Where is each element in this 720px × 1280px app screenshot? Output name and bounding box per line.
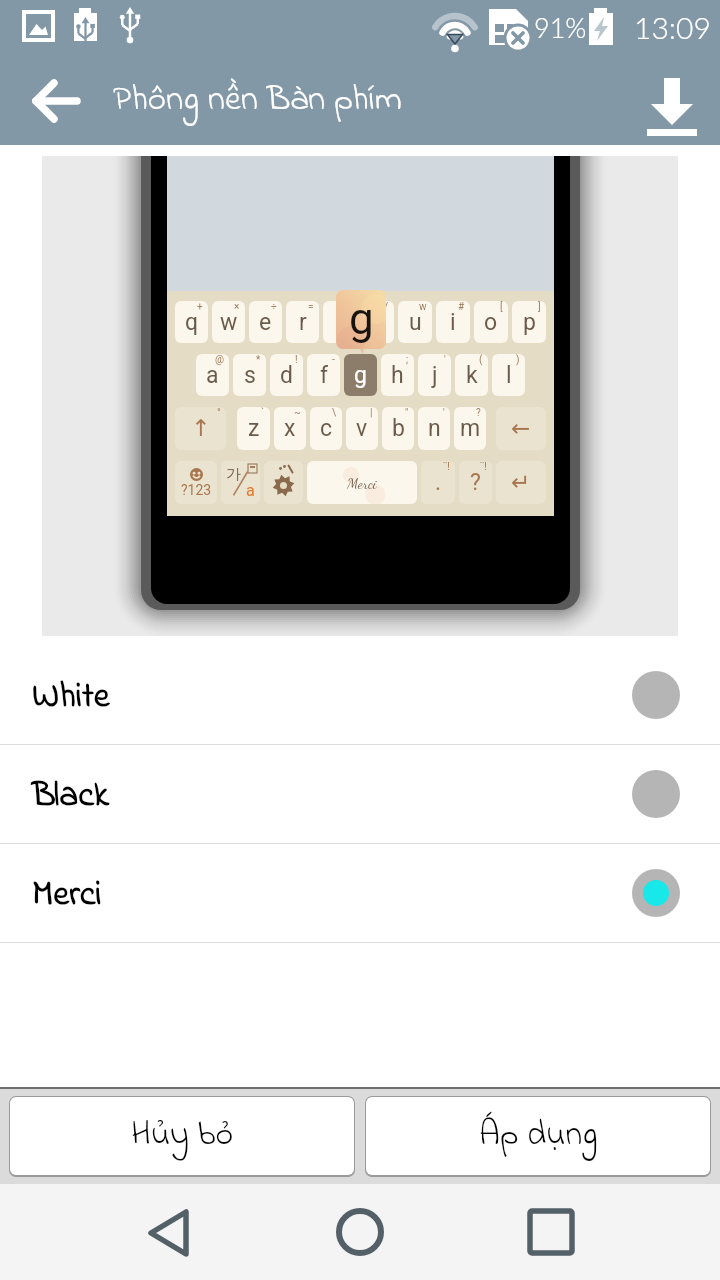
staticText: w: [419, 301, 427, 313]
staticText: c: [320, 415, 333, 442]
staticText: /: [384, 301, 389, 313]
staticText: Hủy bỏ: [131, 1111, 234, 1161]
staticText: u: [409, 309, 422, 336]
staticText: i: [450, 309, 456, 336]
staticText: ~: [294, 407, 301, 419]
staticText: e: [259, 309, 272, 336]
button[interactable]: Back: [20, 71, 80, 131]
button[interactable]: Black: [0, 745, 720, 843]
staticText: ?: [470, 469, 481, 496]
staticText: [: [500, 301, 503, 313]
staticText: m: [460, 415, 481, 442]
staticText: 91%: [534, 11, 587, 43]
staticText: p: [523, 309, 536, 336]
staticText: `: [261, 407, 265, 419]
staticText: ↑: [191, 415, 211, 442]
staticText: y: [372, 309, 383, 336]
staticText: .: [435, 469, 442, 496]
staticText: White: [32, 672, 110, 723]
staticText: #: [458, 301, 465, 313]
staticText: l: [506, 362, 512, 389]
staticText: 가: [226, 465, 241, 484]
staticText: ;: [406, 354, 409, 366]
button[interactable]: White: [0, 646, 720, 744]
staticText: t: [336, 309, 344, 336]
staticText: ←: [511, 415, 531, 442]
staticText: \: [332, 407, 337, 419]
staticText: +: [197, 301, 203, 313]
staticText: |: [370, 407, 373, 419]
staticText: 13:09: [634, 9, 711, 45]
staticText: h: [391, 362, 404, 389]
button[interactable]: Back: [134, 1197, 204, 1267]
staticText: ¨!: [443, 461, 450, 473]
staticText: ': [443, 407, 445, 419]
button[interactable]: Recents: [516, 1197, 586, 1267]
staticText: f: [320, 362, 328, 389]
staticText: ": [405, 407, 409, 419]
staticText: @: [215, 354, 224, 366]
button[interactable]: Áp dụng: [366, 1097, 710, 1175]
staticText: ¨!: [480, 461, 487, 473]
staticText: q: [185, 309, 199, 336]
button[interactable]: Home: [325, 1197, 395, 1267]
staticText: ]: [538, 301, 541, 313]
staticText: ↵: [511, 469, 531, 496]
staticText: n: [428, 415, 441, 442]
staticText: Black: [32, 771, 110, 822]
staticText: !: [295, 354, 298, 366]
staticText: -: [332, 354, 335, 366]
staticText: a: [206, 362, 219, 389]
staticText: a: [246, 481, 255, 500]
staticText: (: [479, 354, 483, 366]
staticText: ?123: [181, 482, 212, 498]
staticText: j: [432, 362, 438, 389]
staticText: Merci: [347, 474, 377, 492]
staticText: b: [392, 415, 405, 442]
staticText: d: [280, 362, 293, 389]
button[interactable]: Hủy bỏ: [10, 1097, 354, 1175]
staticText: Merci: [32, 870, 102, 921]
staticText: ×: [234, 301, 240, 313]
staticText: Áp dụng: [479, 1111, 598, 1161]
staticText: w: [220, 309, 238, 336]
staticText: r: [299, 309, 307, 336]
button[interactable]: Download: [642, 71, 702, 131]
staticText: ?: [476, 407, 481, 419]
staticText: g: [349, 293, 374, 345]
staticText: k: [466, 362, 478, 389]
staticText: Phông nền Bàn phím: [113, 75, 403, 126]
staticText: ): [516, 354, 520, 366]
staticText: °: [217, 407, 221, 419]
staticText: g: [354, 362, 367, 389]
staticText: *: [256, 354, 261, 366]
staticText: ': [444, 354, 446, 366]
staticText: =: [308, 301, 314, 313]
staticText: s: [244, 362, 256, 389]
button[interactable]: Merci: [0, 844, 720, 942]
staticText: ÷: [271, 301, 277, 313]
staticText: v: [356, 415, 368, 442]
staticText: z: [248, 415, 260, 442]
staticText: x: [284, 415, 296, 442]
staticText: o: [484, 309, 498, 336]
